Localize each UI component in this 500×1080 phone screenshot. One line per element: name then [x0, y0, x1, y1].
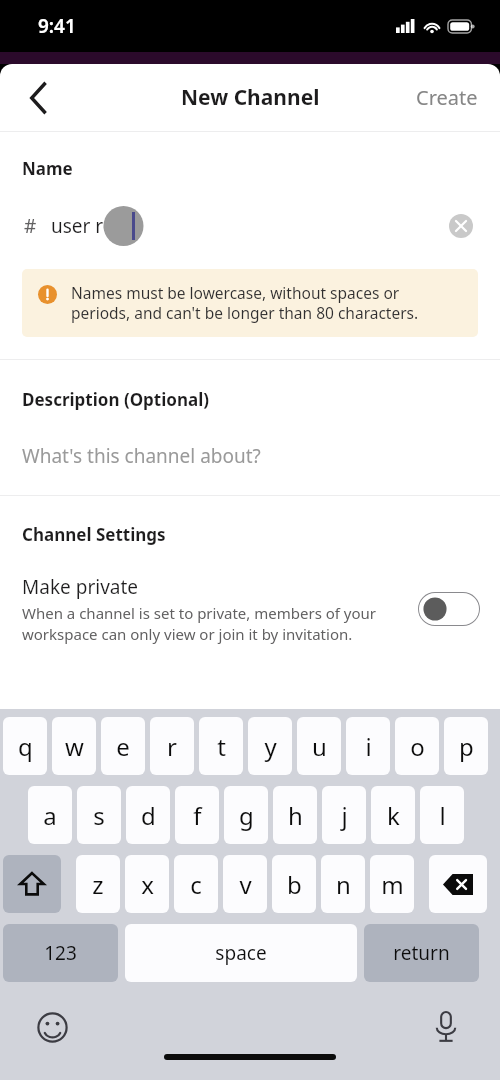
button[interactable]: w: [52, 717, 96, 775]
staticText: s: [93, 799, 105, 832]
staticText: t: [217, 730, 226, 763]
button[interactable]: b: [272, 855, 316, 913]
button[interactable]: i: [346, 717, 390, 775]
button[interactable]: s: [77, 786, 121, 844]
staticText: w: [65, 730, 84, 763]
button[interactable]: l: [420, 786, 464, 844]
staticText: d: [141, 799, 156, 832]
staticText: Make private: [22, 574, 139, 600]
button[interactable]: j: [322, 786, 366, 844]
staticText: k: [387, 799, 400, 832]
button[interactable]: Make private toggle: [418, 592, 480, 626]
button[interactable]: v: [223, 855, 267, 913]
staticText: b: [287, 868, 302, 901]
button[interactable]: y: [248, 717, 292, 775]
button[interactable]: t: [199, 717, 243, 775]
staticText: user res: [51, 213, 123, 239]
button[interactable]: Dictation: [426, 1007, 466, 1047]
staticText: Name: [22, 157, 73, 180]
staticText: y: [264, 730, 277, 763]
button[interactable]: Clear text: [444, 209, 478, 243]
staticText: a: [43, 799, 57, 832]
button[interactable]: Emoji: [32, 1007, 72, 1047]
staticText: n: [336, 868, 351, 901]
button[interactable]: Backspace: [429, 855, 487, 913]
staticText: h: [288, 799, 303, 832]
button[interactable]: Make private: [0, 574, 500, 645]
staticText: v: [239, 868, 252, 901]
button[interactable]: u: [297, 717, 341, 775]
button[interactable]: e: [101, 717, 145, 775]
staticText: space: [215, 940, 267, 966]
button[interactable]: Shift: [3, 855, 61, 913]
button[interactable]: z: [76, 855, 120, 913]
staticText: #: [24, 213, 37, 239]
staticText: i: [365, 730, 372, 763]
button[interactable]: a: [28, 786, 72, 844]
staticText: return: [393, 940, 450, 966]
button[interactable]: h: [273, 786, 317, 844]
button[interactable]: n: [321, 855, 365, 913]
button[interactable]: o: [395, 717, 439, 775]
staticText: e: [116, 730, 130, 763]
staticText: o: [410, 730, 425, 763]
staticText: p: [459, 730, 474, 763]
button[interactable]: f: [175, 786, 219, 844]
button[interactable]: p: [444, 717, 488, 775]
staticText: f: [193, 799, 202, 832]
button[interactable]: c: [174, 855, 218, 913]
staticText: x: [141, 868, 154, 901]
button[interactable]: Back: [14, 74, 62, 122]
staticText: Names must be lowercase, without spaces …: [71, 282, 462, 324]
staticText: When a channel is set to private, member…: [22, 603, 404, 645]
staticText: c: [190, 868, 202, 901]
staticText: u: [312, 730, 327, 763]
button[interactable]: q: [3, 717, 47, 775]
staticText: q: [18, 730, 33, 763]
button[interactable]: 123: [3, 924, 118, 982]
button[interactable]: k: [371, 786, 415, 844]
staticText: What's this channel about?: [22, 443, 261, 469]
staticText: Description (Optional): [22, 388, 209, 411]
staticText: z: [92, 868, 104, 901]
staticText: Channel Settings: [22, 523, 166, 546]
button[interactable]: x: [125, 855, 169, 913]
staticText: 9:41: [38, 13, 76, 39]
staticText: Create: [416, 84, 478, 111]
button[interactable]: Create: [406, 74, 488, 121]
staticText: m: [381, 868, 404, 901]
button[interactable]: d: [126, 786, 170, 844]
staticText: New Channel: [181, 83, 320, 112]
button[interactable]: g: [224, 786, 268, 844]
button[interactable]: return: [364, 924, 479, 982]
button[interactable]: r: [150, 717, 194, 775]
button[interactable]: What's this channel about?: [0, 439, 500, 473]
button[interactable]: m: [370, 855, 414, 913]
button[interactable]: space: [125, 924, 357, 982]
staticText: j: [341, 799, 348, 832]
staticText: r: [167, 730, 177, 763]
staticText: g: [239, 799, 254, 832]
staticText: 123: [44, 940, 77, 966]
staticText: l: [439, 799, 446, 832]
